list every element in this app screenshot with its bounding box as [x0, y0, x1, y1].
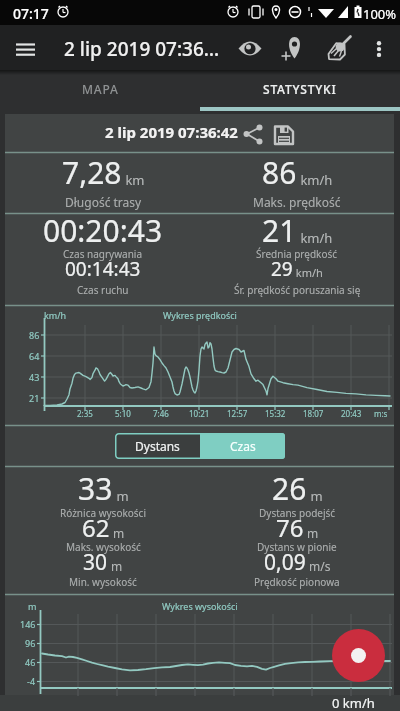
- button[interactable]: Czas: [200, 433, 285, 459]
- staticText: 43: [29, 371, 40, 383]
- staticText: Dystans: [135, 438, 180, 454]
- staticText: m/s: [306, 558, 331, 574]
- staticText: 30: [83, 548, 108, 577]
- staticText: Różnica wysokości: [60, 506, 146, 520]
- staticText: km/h: [297, 171, 333, 189]
- staticText: 33: [78, 468, 113, 509]
- button[interactable]: [276, 32, 316, 66]
- staticText: m:s: [374, 408, 388, 419]
- staticText: 7,28: [62, 152, 122, 193]
- staticText: 29: [271, 256, 293, 282]
- staticText: Długość trasy: [65, 194, 142, 210]
- staticText: Wykres prędkości: [163, 309, 237, 321]
- staticText: Wykres wysokości: [162, 600, 238, 612]
- staticText: Śr. prędkość poruszania się: [234, 283, 361, 297]
- staticText: 46: [25, 656, 36, 668]
- staticText: Średnia prędkość: [256, 247, 338, 261]
- staticText: MAPA: [82, 81, 119, 97]
- staticText: 21: [262, 210, 297, 251]
- button[interactable]: Dystans: [115, 433, 200, 459]
- staticText: 2 lip 2019 07:36:42: [105, 122, 238, 142]
- staticText: 64: [29, 350, 40, 362]
- staticText: 20:43: [341, 408, 362, 419]
- button[interactable]: [326, 32, 366, 66]
- staticText: m: [307, 487, 323, 505]
- staticText: m: [113, 487, 129, 505]
- staticText: km/h: [44, 309, 67, 321]
- button[interactable]: [238, 120, 266, 147]
- staticText: Maks. wysokość: [66, 540, 141, 554]
- button[interactable]: STATYSTYKI: [200, 74, 400, 104]
- staticText: km: [122, 171, 145, 189]
- staticText: 86: [262, 152, 297, 193]
- staticText: Dystans w pionie: [257, 540, 337, 554]
- staticText: m: [110, 525, 125, 541]
- staticText: 10:21: [189, 408, 210, 419]
- staticText: 15:32: [265, 408, 286, 419]
- staticText: 0 km/h: [332, 694, 375, 711]
- staticText: 18:07: [303, 408, 324, 419]
- staticText: km/h: [293, 265, 323, 280]
- button[interactable]: [6, 36, 50, 62]
- button[interactable]: MAPA: [0, 74, 200, 104]
- staticText: STATYSTYKI: [263, 81, 337, 97]
- staticText: -4: [27, 675, 36, 687]
- staticText: Czas nagrywania: [63, 247, 143, 261]
- staticText: m: [304, 525, 319, 541]
- staticText: km/h: [297, 229, 333, 247]
- staticText: Min. wysokość: [69, 575, 137, 589]
- staticText: 26: [272, 468, 307, 509]
- staticText: m: [28, 600, 37, 612]
- staticText: 07:17: [13, 4, 49, 23]
- button[interactable]: [332, 629, 385, 682]
- staticText: 76: [276, 511, 304, 544]
- staticText: 62: [82, 511, 110, 544]
- staticText: 00:14:43: [65, 256, 141, 282]
- staticText: m: [108, 558, 123, 574]
- staticText: 2:35: [77, 408, 93, 419]
- staticText: Prędkość pionowa: [254, 575, 340, 589]
- staticText: 00:20:43: [43, 210, 163, 251]
- staticText: Dystans podejść: [259, 506, 336, 520]
- staticText: 0,09: [264, 548, 306, 577]
- staticText: 5:10: [115, 408, 131, 419]
- staticText: Czas: [230, 438, 256, 454]
- button[interactable]: [364, 32, 398, 66]
- staticText: Czas ruchu: [77, 283, 129, 297]
- staticText: 2 lip 2019 07:36…: [64, 36, 220, 62]
- staticText: 7:46: [153, 408, 169, 419]
- button[interactable]: [270, 120, 298, 147]
- staticText: 96: [25, 637, 36, 649]
- staticText: Maks. prędkość: [253, 194, 341, 210]
- staticText: 12:57: [227, 408, 248, 419]
- staticText: 146: [20, 618, 36, 630]
- staticText: 21: [29, 392, 40, 404]
- staticText: 100%: [363, 5, 397, 23]
- button[interactable]: [230, 34, 270, 64]
- staticText: 86: [29, 329, 40, 341]
